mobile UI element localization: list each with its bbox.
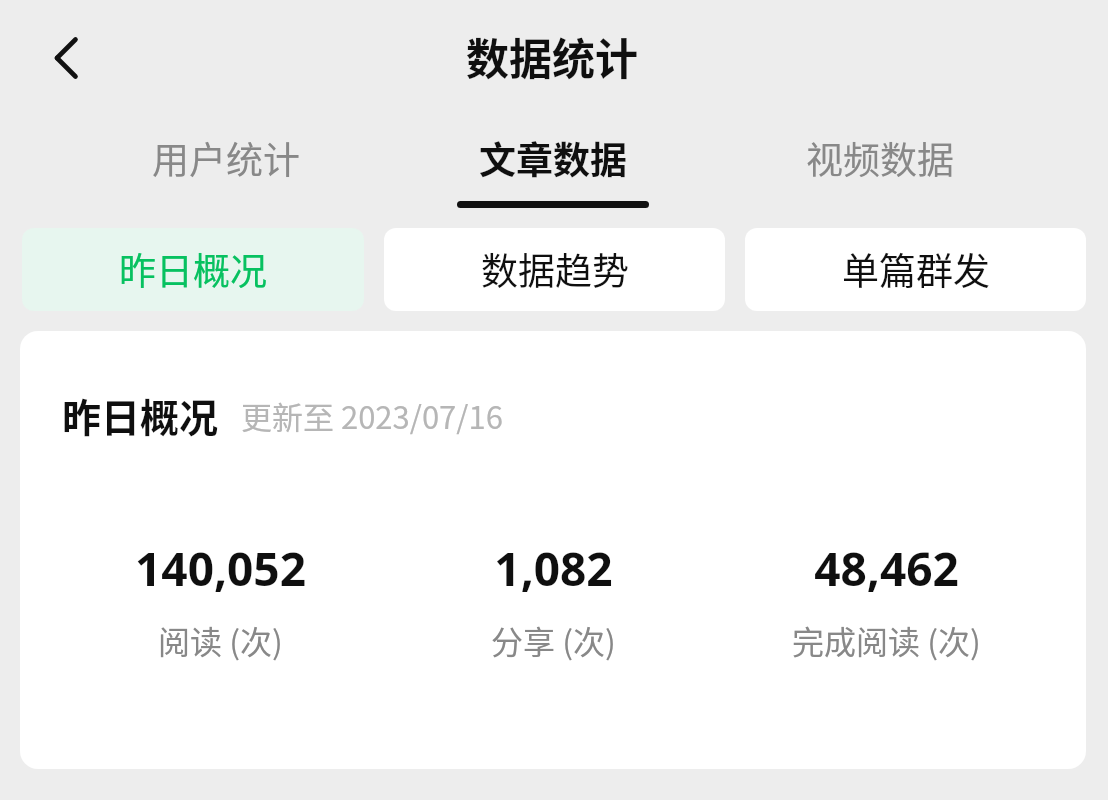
staticText: 昨日概况 xyxy=(62,387,219,443)
button[interactable]: 文章数据 xyxy=(389,131,716,208)
staticText: 完成阅读 (次) xyxy=(792,617,981,663)
staticText: 阅读 (次) xyxy=(158,617,283,663)
staticText: 更新至 2023/07/16 xyxy=(241,393,503,438)
button[interactable]: 数据趋势 xyxy=(384,228,725,311)
staticText: 分享 (次) xyxy=(491,617,616,663)
staticText: 数据趋势 xyxy=(481,242,629,296)
staticText: 昨日概况 xyxy=(119,242,267,296)
button[interactable]: Back xyxy=(36,22,96,94)
staticText: 用户统计 xyxy=(152,131,300,185)
staticText: 文章数据 xyxy=(479,131,627,185)
staticText: 48,462 xyxy=(814,537,959,600)
staticText: 1,082 xyxy=(494,537,613,600)
staticText: 140,052 xyxy=(135,537,306,600)
button[interactable]: 视频数据 xyxy=(716,131,1043,201)
staticText: 数据统计 xyxy=(466,25,638,87)
button[interactable]: 昨日概况 xyxy=(22,228,364,311)
staticText: 单篇群发 xyxy=(842,242,990,296)
button[interactable]: 单篇群发 xyxy=(745,228,1086,311)
button[interactable]: 用户统计 xyxy=(62,131,389,201)
staticText: 视频数据 xyxy=(806,131,954,185)
